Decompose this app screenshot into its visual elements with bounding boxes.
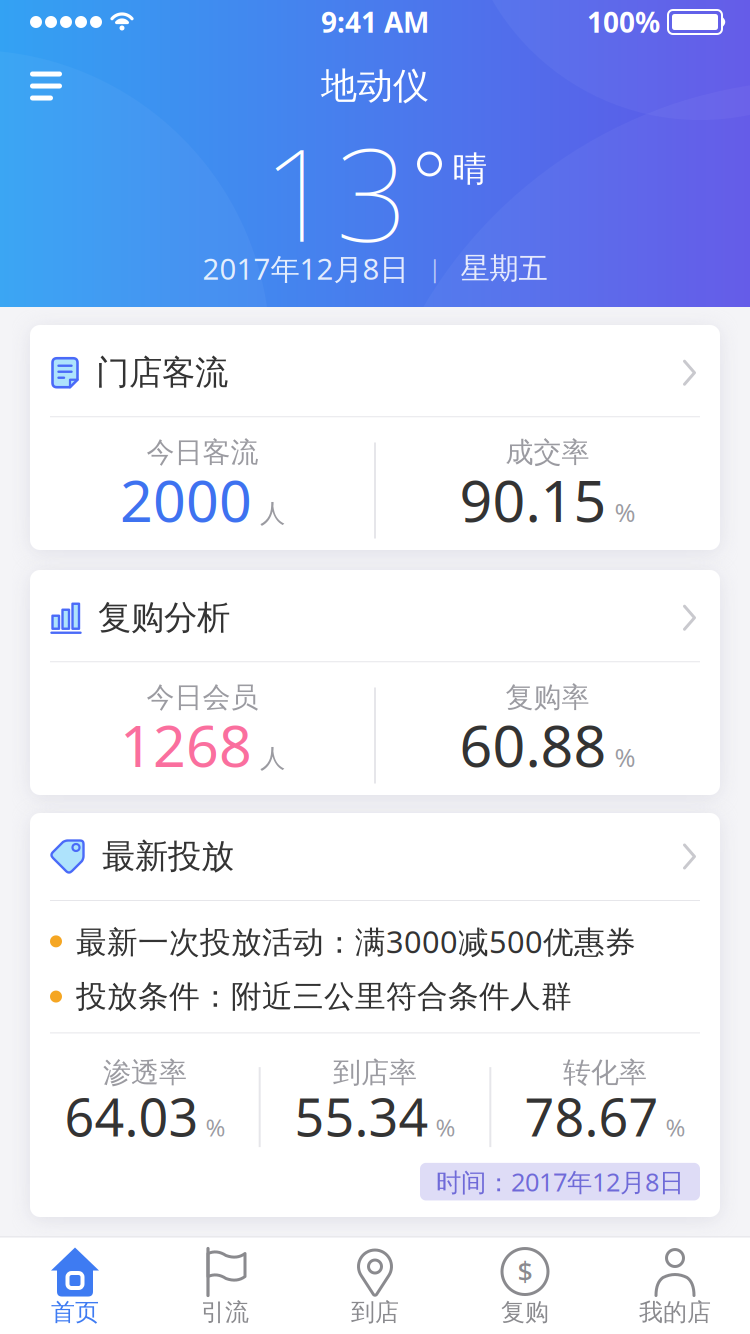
staticText: %: [205, 1111, 225, 1143]
staticText: 地动仪: [321, 64, 429, 108]
staticText: 复购: [501, 1297, 549, 1327]
staticText: 1268: [120, 707, 252, 783]
button[interactable]: Menu: [30, 71, 62, 101]
staticText: $: [517, 1254, 532, 1289]
staticText: 100%: [587, 3, 660, 41]
staticText: 最新投放: [102, 836, 234, 877]
button[interactable]: 最新投放: [30, 813, 720, 1217]
staticText: 投放条件：附近三公里符合条件人群: [76, 978, 572, 1015]
button[interactable]: 引流: [150, 1245, 300, 1327]
staticText: 55.34: [294, 1082, 428, 1151]
staticText: %: [435, 1111, 455, 1143]
staticText: 到店率: [333, 1055, 417, 1090]
button[interactable]: 到店: [300, 1245, 450, 1327]
button[interactable]: $: [450, 1245, 600, 1327]
staticText: 星期五: [460, 250, 547, 286]
staticText: %: [614, 495, 635, 529]
staticText: 60.88: [459, 707, 606, 783]
staticText: 成交率: [505, 435, 589, 470]
staticText: 9:41 AM: [321, 3, 429, 41]
staticText: 78.67: [524, 1082, 658, 1151]
staticText: 2017年12月8日: [202, 249, 408, 288]
staticText: 90.15: [459, 462, 606, 538]
staticText: 2000: [120, 462, 252, 538]
button[interactable]: 门店客流: [30, 325, 720, 550]
staticText: 64.03: [64, 1082, 198, 1151]
staticText: 引流: [201, 1297, 249, 1327]
staticText: 复购率: [505, 680, 589, 715]
staticText: 人: [260, 743, 285, 774]
button[interactable]: 复购分析: [30, 570, 720, 795]
staticText: 人: [260, 498, 285, 529]
staticText: %: [614, 740, 635, 774]
staticText: 转化率: [563, 1055, 647, 1090]
staticText: |: [428, 253, 440, 283]
staticText: 最新一次投放活动：满3000减500优惠券: [76, 921, 636, 962]
button[interactable]: 首页: [0, 1245, 150, 1327]
staticText: 今日会员: [146, 680, 258, 715]
staticText: 今日客流: [146, 435, 258, 470]
staticText: 13: [262, 107, 408, 277]
staticText: %: [665, 1111, 685, 1143]
button[interactable]: 我的店: [600, 1245, 750, 1327]
staticText: 到店: [351, 1297, 399, 1327]
staticText: 时间：2017年12月8日: [436, 1165, 684, 1198]
staticText: 复购分析: [98, 597, 230, 638]
staticText: 我的店: [639, 1297, 711, 1327]
staticText: 渗透率: [103, 1055, 187, 1090]
staticText: 首页: [51, 1297, 99, 1327]
staticText: 门店客流: [96, 352, 228, 393]
staticText: 晴: [452, 148, 487, 191]
